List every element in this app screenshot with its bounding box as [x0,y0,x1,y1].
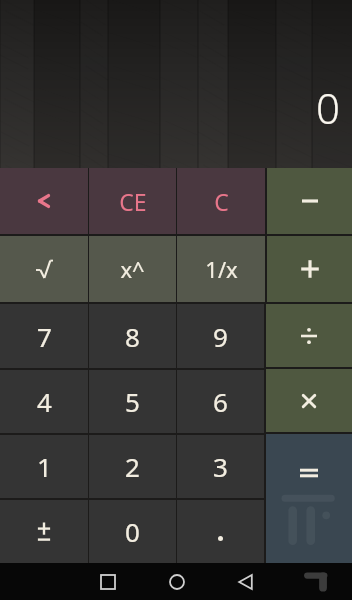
staticText: C [214,186,229,217]
button[interactable]: 1 [0,435,88,498]
button[interactable]: Multiply [266,369,352,432]
staticText: 6 [213,384,228,419]
staticText: 5 [125,384,140,419]
button[interactable]: Backspace [0,168,88,234]
staticText: 1/x [205,254,238,284]
button[interactable]: 5 [89,370,176,433]
button[interactable]: Plus minus [0,500,88,563]
button[interactable]: C [177,168,265,234]
button[interactable]: 0 [89,500,176,563]
button[interactable]: Equals [266,434,352,563]
button[interactable]: Decimal point [177,500,264,563]
button[interactable]: CE [89,168,176,234]
staticText: 4 [37,384,52,419]
button[interactable]: 1/x [177,236,265,302]
button[interactable]: Back [211,563,280,600]
staticText: 2 [125,449,140,484]
staticText: 7 [37,319,52,354]
button[interactable]: 8 [89,304,176,368]
button[interactable]: 2 [89,435,176,498]
staticText: 8 [125,319,140,354]
staticText: 0 [316,79,340,136]
staticText: x^ [120,254,145,284]
button[interactable]: 3 [177,435,264,498]
button[interactable]: 9 [177,304,264,368]
button[interactable]: Divide [266,304,352,367]
staticText: 9 [213,319,228,354]
button[interactable]: Minus [267,168,352,234]
button[interactable]: x^ [89,236,176,302]
button[interactable]: Square root [0,236,88,302]
button[interactable]: 7 [0,304,88,368]
button[interactable]: Home [142,563,211,600]
staticText: CE [119,186,147,217]
button[interactable]: Recent apps [73,563,142,600]
button[interactable]: 4 [0,370,88,433]
staticText: 3 [213,449,228,484]
staticText: 0 [125,514,140,549]
staticText: 1 [37,449,52,484]
button[interactable]: 6 [177,370,264,433]
button[interactable]: Plus [267,236,352,302]
